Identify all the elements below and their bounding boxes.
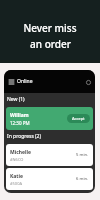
staticText: Katie — [10, 173, 23, 180]
staticText: an order — [30, 37, 71, 51]
button[interactable]: Katie — [6, 168, 93, 190]
staticText: Accept — [72, 116, 85, 121]
staticText: 12:30 PM — [10, 120, 30, 126]
staticText: 6 min. — [76, 176, 89, 182]
button[interactable]: Accept — [67, 114, 90, 123]
staticText: In progress (2) — [7, 133, 41, 140]
button[interactable]: Menu — [7, 78, 15, 86]
staticText: William — [10, 112, 29, 119]
staticText: New (1) — [7, 96, 25, 103]
staticText: Online — [17, 78, 33, 85]
staticText: Never miss — [23, 21, 77, 35]
staticText: #N6CO — [10, 157, 24, 162]
staticText: Michelle — [10, 149, 31, 156]
button[interactable]: William — [6, 107, 93, 130]
staticText: 5 min. — [76, 152, 89, 158]
staticText: #500A — [10, 181, 23, 186]
button[interactable]: Michelle — [6, 144, 93, 166]
button[interactable]: Refresh — [84, 78, 92, 86]
